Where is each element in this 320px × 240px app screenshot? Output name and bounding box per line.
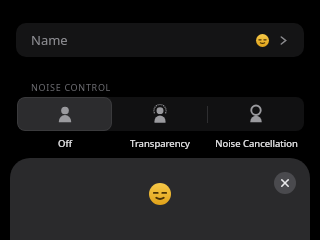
- staticText: Noise Cancellation: [215, 137, 298, 150]
- staticText: Transparency: [130, 137, 190, 150]
- button[interactable]: [208, 97, 304, 131]
- button[interactable]: Name: [16, 23, 304, 57]
- staticText: NOISE CONTROL: [31, 81, 112, 93]
- button[interactable]: [112, 97, 208, 131]
- button[interactable]: Close: [274, 172, 296, 194]
- staticText: Name: [31, 31, 68, 49]
- button[interactable]: [17, 97, 112, 131]
- staticText: Off: [58, 137, 72, 150]
